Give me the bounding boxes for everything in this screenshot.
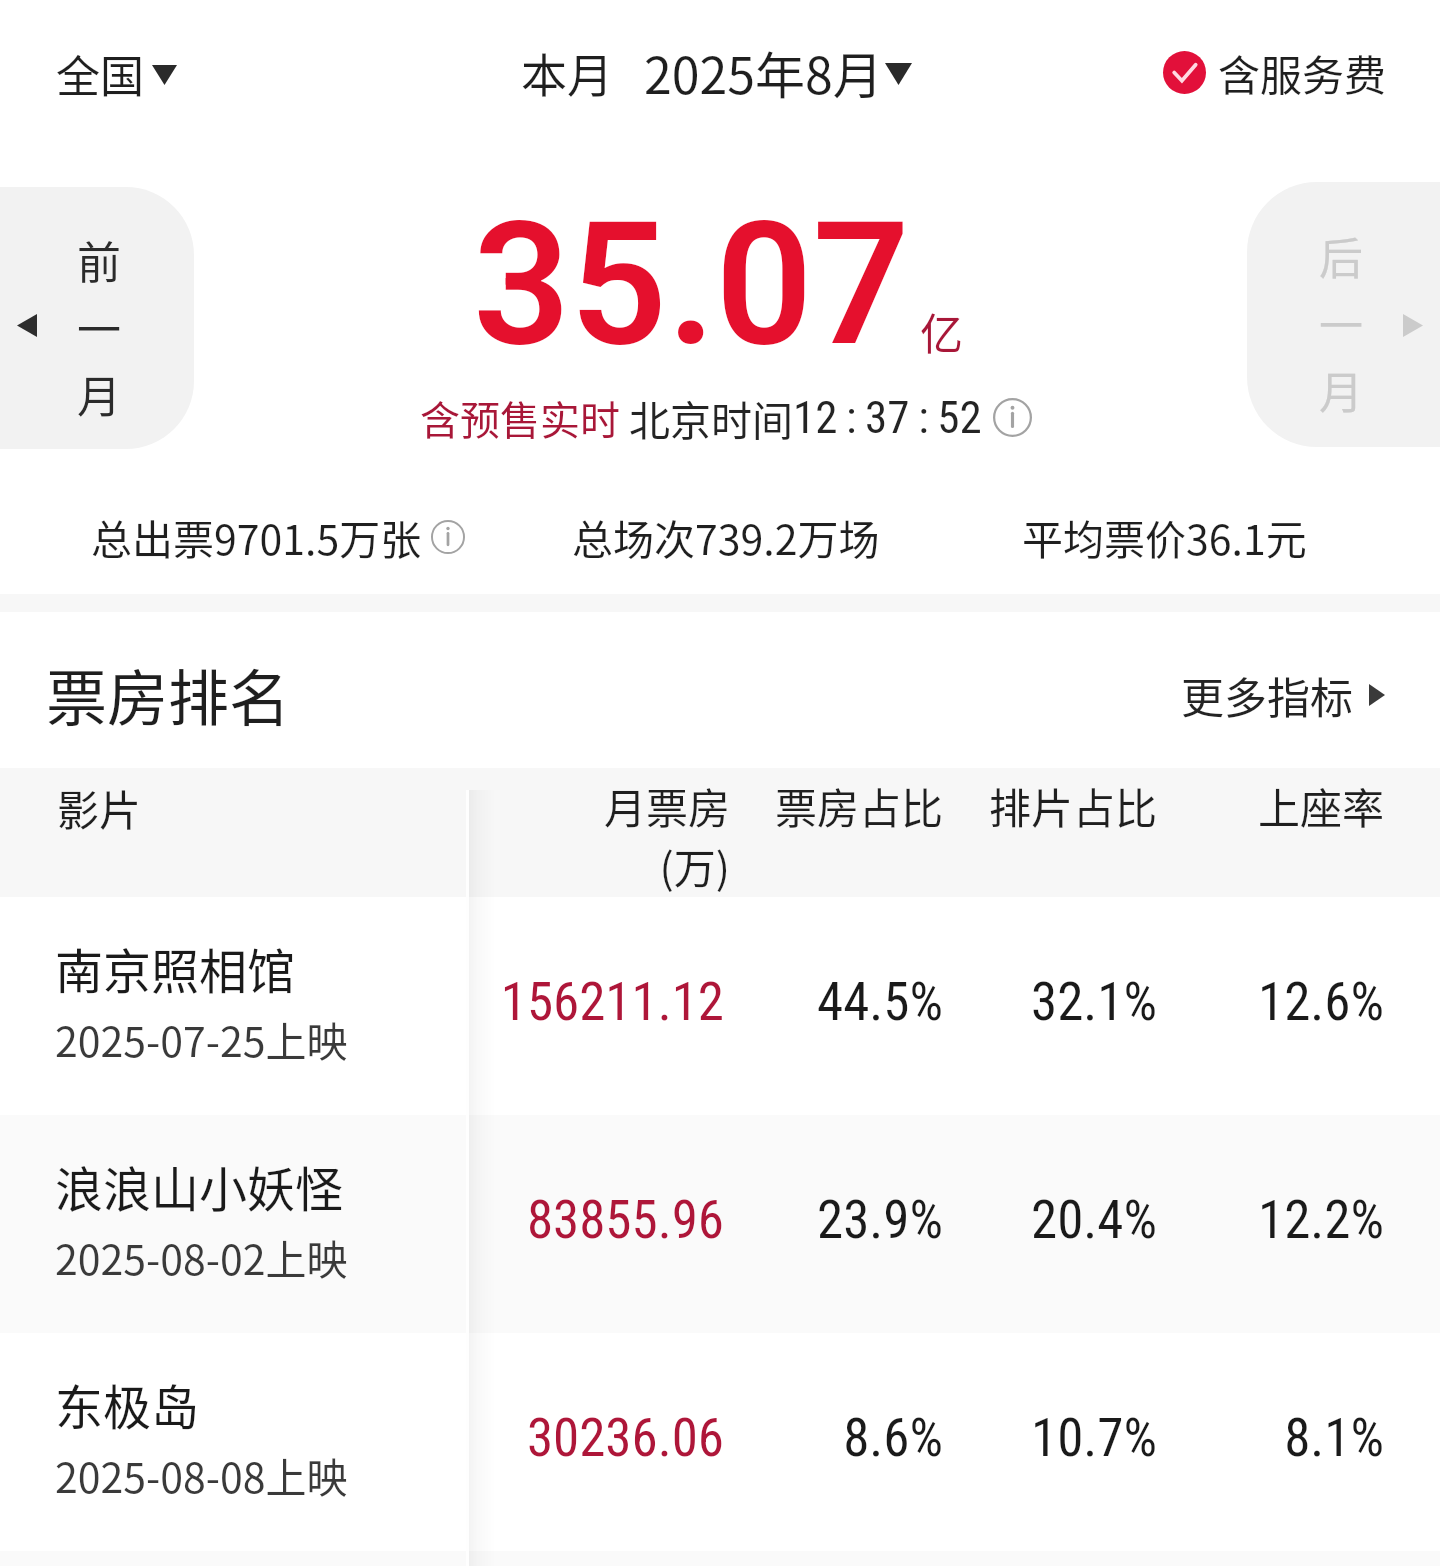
button[interactable]: 前一月 [0, 187, 194, 449]
staticText: 2025年8月 [644, 36, 883, 108]
staticText: 8.1% [1284, 1407, 1384, 1469]
button[interactable]: 实时数据说明 [993, 398, 1032, 437]
staticText: 20.4% [1030, 1189, 1157, 1251]
staticText: 32.1% [1030, 971, 1157, 1033]
staticText: 北京时间 [629, 388, 793, 447]
staticText: 83855.96 [526, 1189, 724, 1251]
staticText: 更多指标 [1181, 664, 1353, 726]
staticText: 2025-07-25上映 [55, 1009, 348, 1068]
staticText: 含服务费 [1218, 42, 1387, 103]
staticText: 票房排名 [46, 650, 291, 738]
button[interactable]: 含服务费 [1163, 42, 1387, 103]
staticText: 东极岛 [55, 1369, 200, 1439]
staticText: 44.5% [816, 971, 943, 1033]
staticText: 总场次739.2万场 [572, 507, 880, 566]
staticText: 平均票价36.1元 [1022, 507, 1307, 566]
staticText: 总出票9701.5万张 [91, 507, 422, 566]
staticText: 全国 [56, 42, 144, 106]
staticText: 12 : 37 : 52 [793, 391, 982, 444]
staticText: 上座率 [1257, 775, 1384, 836]
button[interactable]: 本月 [521, 36, 912, 108]
button[interactable]: 浪浪山小妖怪 [0, 1115, 1440, 1333]
staticText: 2025-08-08上映 [55, 1445, 348, 1504]
staticText: 前 一 月 [77, 228, 121, 425]
staticText: 含预售实时 [420, 389, 620, 447]
button[interactable]: 后一月 [1247, 182, 1440, 447]
staticText: 156211.12 [500, 971, 724, 1033]
staticText: 8.6% [843, 1407, 943, 1469]
staticText: 10.7% [1030, 1407, 1157, 1469]
button[interactable]: 南京照相馆 [0, 897, 1440, 1115]
staticText: 排片占比 [988, 775, 1157, 836]
staticText: 35.07 [473, 185, 910, 384]
staticText: 浪浪山小妖怪 [55, 1151, 344, 1221]
staticText: 后 一 月 [1319, 224, 1363, 421]
staticText: 亿 [920, 300, 963, 362]
button[interactable]: 东极岛 [0, 1333, 1440, 1551]
staticText: 本月 [521, 39, 613, 106]
staticText: 月票房 (万) [603, 775, 730, 896]
staticText: 影片 [57, 777, 142, 838]
button[interactable]: 全国 [56, 42, 177, 106]
staticText: 30236.06 [526, 1407, 724, 1469]
staticText: 23.9% [816, 1189, 943, 1251]
staticText: 12.6% [1257, 971, 1384, 1033]
staticText: 2025-08-02上映 [55, 1227, 348, 1286]
button[interactable]: 总出票说明 [431, 520, 465, 554]
staticText: 12.2% [1257, 1189, 1384, 1251]
staticText: 票房占比 [774, 775, 943, 836]
button[interactable]: 更多指标 [1181, 664, 1385, 726]
staticText: 南京照相馆 [55, 933, 296, 1003]
